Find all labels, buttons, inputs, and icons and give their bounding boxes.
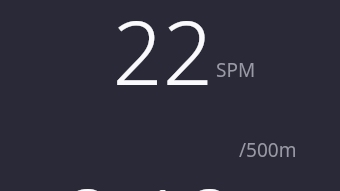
button[interactable]: 2:12 <box>63 159 297 191</box>
staticText: SPM <box>216 57 256 83</box>
staticText: 2:12 <box>63 159 236 191</box>
staticText: 22 <box>112 0 213 111</box>
other: Rowing metrics <box>0 0 340 191</box>
button[interactable]: 22 <box>112 0 256 111</box>
staticText: /500m <box>239 137 297 163</box>
